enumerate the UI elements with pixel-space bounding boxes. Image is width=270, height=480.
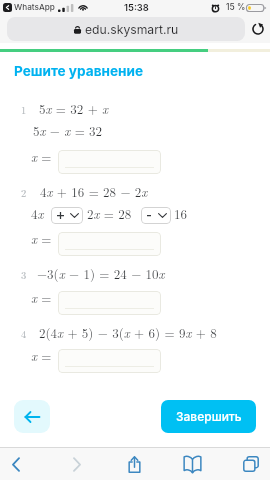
staticText: 4 bbox=[21, 326, 27, 341]
staticText: 2(4x + 5) − 3(x + 6) = 9x + 8 bbox=[39, 323, 217, 341]
staticText: 5x = 32 + x bbox=[39, 99, 109, 117]
button[interactable] bbox=[58, 291, 161, 315]
button[interactable]: Закладки bbox=[181, 448, 204, 480]
button[interactable]: Назад bbox=[14, 400, 50, 433]
staticText: Завершить bbox=[176, 409, 242, 424]
button[interactable]: edu.skysmart.ru bbox=[7, 17, 245, 41]
staticText: 2 bbox=[21, 185, 27, 200]
staticText: −3(x − 1) = 24 − 10x bbox=[37, 264, 165, 282]
staticText: 15 % bbox=[226, 2, 246, 12]
button[interactable]: Поделиться bbox=[123, 448, 146, 480]
staticText: 5x − x = 32 bbox=[33, 121, 103, 139]
staticText: x = bbox=[31, 288, 52, 306]
button[interactable] bbox=[58, 150, 161, 174]
button[interactable]: Обновить страницу bbox=[245, 17, 270, 41]
staticText: WhatsApp bbox=[14, 2, 55, 12]
button[interactable] bbox=[58, 232, 161, 256]
staticText: 3 bbox=[21, 267, 27, 282]
staticText: Решите уравнение bbox=[14, 63, 144, 79]
staticText: 4x bbox=[31, 204, 44, 222]
button[interactable] bbox=[58, 349, 161, 373]
button[interactable]: Вкладки bbox=[239, 448, 262, 480]
staticText: 15:38 bbox=[124, 2, 149, 13]
button[interactable] bbox=[51, 207, 83, 224]
button[interactable]: Завершить bbox=[161, 400, 256, 433]
staticText: 16 bbox=[174, 204, 187, 222]
staticText: 4x + 16 = 28 − 2x bbox=[40, 182, 148, 200]
staticText: x = bbox=[31, 346, 52, 364]
staticText: 1 bbox=[21, 102, 27, 117]
staticText: x = bbox=[31, 147, 52, 165]
staticText: x = bbox=[31, 229, 52, 247]
staticText: 2x = 28 bbox=[87, 204, 132, 222]
button[interactable]: Вперёд bbox=[65, 448, 88, 480]
button[interactable]: Назад bbox=[4, 448, 27, 480]
staticText: edu.skysmart.ru bbox=[85, 22, 179, 37]
button[interactable] bbox=[141, 207, 171, 224]
